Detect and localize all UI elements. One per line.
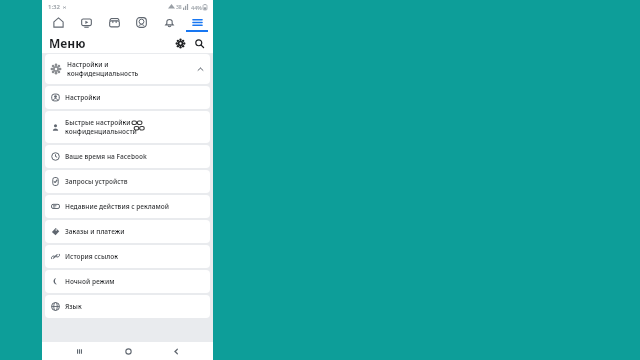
button[interactable]: Home <box>46 13 70 32</box>
button[interactable]: Menu <box>185 13 209 32</box>
staticText: конфиденциальности <box>65 127 137 136</box>
staticText: Ваше время на Facebook <box>65 152 147 161</box>
button[interactable]: Запросы устройств <box>45 170 210 193</box>
staticText: 44% <box>191 4 202 11</box>
button[interactable]: Back <box>165 342 187 360</box>
button[interactable]: Video <box>74 13 98 32</box>
button[interactable]: Search <box>191 35 207 51</box>
button[interactable]: История ссылок <box>45 245 210 268</box>
staticText: 38 <box>176 4 182 11</box>
button[interactable]: Ночной режим <box>45 270 210 293</box>
staticText: Ночной режим <box>65 277 115 286</box>
staticText: Запросы устройств <box>65 177 128 186</box>
button[interactable]: Recents <box>68 342 90 360</box>
button[interactable]: Marketplace <box>102 13 126 32</box>
staticText: 1:32 <box>48 3 60 11</box>
button[interactable]: Быстрые настройки <box>45 111 210 143</box>
button[interactable]: Ваше время на Facebook <box>45 145 210 168</box>
button[interactable]: Заказы и платежи <box>45 220 210 243</box>
staticText: Настройки и <box>67 60 109 69</box>
staticText: Быстрые настройки <box>65 118 131 127</box>
staticText: Заказы и платежи <box>65 227 125 236</box>
button[interactable]: Groups <box>129 13 153 32</box>
staticText: Недавние действия с рекламой <box>65 202 170 211</box>
button[interactable]: Язык <box>45 295 210 318</box>
staticText: конфиденциальность <box>67 69 139 78</box>
staticText: Язык <box>65 302 82 311</box>
button[interactable]: Notifications <box>157 13 181 32</box>
staticText: История ссылок <box>65 252 118 261</box>
button[interactable]: Настройки и <box>45 54 210 84</box>
button[interactable]: Settings <box>172 35 188 51</box>
button[interactable]: Home <box>117 342 139 360</box>
button[interactable]: Недавние действия с рекламой <box>45 195 210 218</box>
button[interactable]: Настройки <box>45 86 210 109</box>
staticText: Настройки <box>65 93 101 102</box>
staticText: Меню <box>49 35 86 51</box>
